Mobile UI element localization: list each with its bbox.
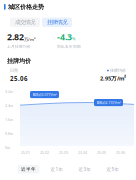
staticText: 0w <box>5 145 10 150</box>
staticText: 2.95万/m² <box>100 74 126 82</box>
staticText: 上月挂牌均价 <box>7 44 31 49</box>
staticText: -4.3% <box>57 31 76 43</box>
staticText: 25.06 <box>116 150 125 155</box>
button[interactable]: 近1年 <box>46 165 68 173</box>
staticText: 同比去年同期 <box>57 44 81 49</box>
staticText: 25.02 <box>40 150 49 155</box>
button[interactable]: 近半年 <box>17 165 39 173</box>
staticText: 挂牌情况 <box>47 19 67 26</box>
staticText: 2.4w <box>5 103 13 108</box>
staticText: 城区价格走势 <box>8 3 44 11</box>
staticText: 25.05 <box>97 150 106 155</box>
staticText: 1.6w <box>5 117 13 122</box>
staticText: 25.04 <box>78 150 87 155</box>
staticText: 25.03 <box>59 150 68 155</box>
staticText: 0.8w <box>5 131 13 136</box>
staticText: 近3年 <box>78 166 91 172</box>
button[interactable]: 近3年 <box>74 165 96 173</box>
staticText: 近5年 <box>106 166 119 172</box>
button[interactable]: 成交情况 <box>10 17 40 27</box>
staticText: 2.82万/m² <box>7 31 35 43</box>
button[interactable]: 近5年 <box>102 165 124 173</box>
button[interactable]: 挂牌情况 <box>42 17 72 27</box>
staticText: 3.2w <box>5 89 13 94</box>
staticText: 近半年 <box>21 166 36 172</box>
staticText: 25.06 <box>10 74 28 83</box>
staticText: 25.01 <box>21 150 30 155</box>
staticText: 挂牌均价 <box>7 57 31 65</box>
staticText: 挂牌均价 <box>110 68 126 73</box>
staticText: 成交情况 <box>15 19 35 26</box>
staticText: 最低点2.73万/m² <box>96 100 120 105</box>
staticText: 日照 <box>10 68 18 73</box>
staticText: 最高点3.07万/m² <box>32 92 56 97</box>
staticText: 近1年 <box>50 166 63 172</box>
